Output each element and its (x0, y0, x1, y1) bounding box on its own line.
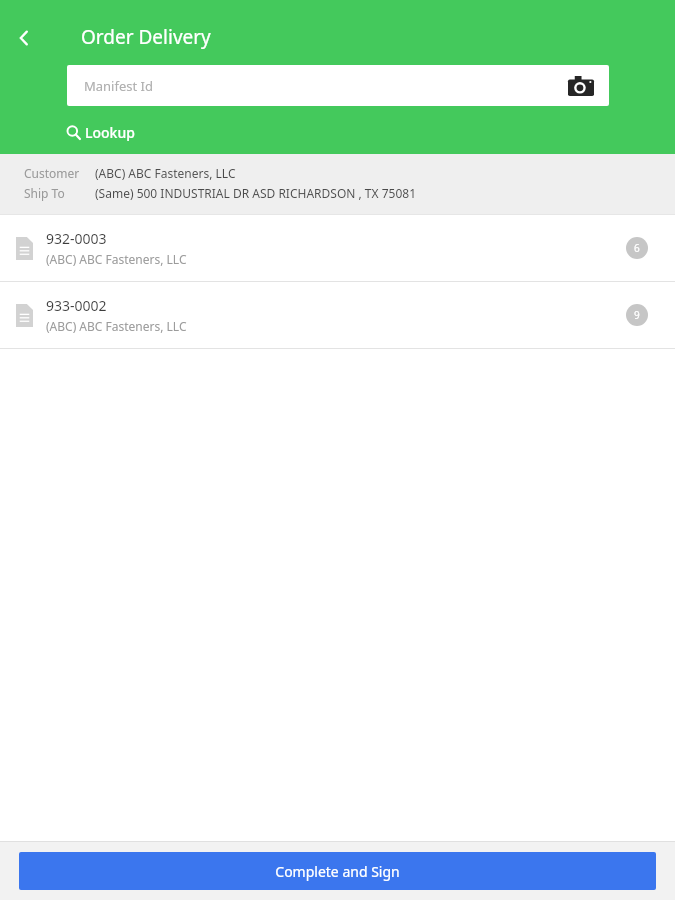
button[interactable]: Lookup (66, 118, 135, 146)
button[interactable]: 933-0002 (0, 282, 675, 348)
staticText: Order Delivery (81, 24, 211, 50)
button[interactable]: 932-0003 (0, 215, 675, 281)
button[interactable]: Complete and Sign (19, 852, 656, 890)
staticText: (ABC) ABC Fasteners, LLC (46, 251, 187, 267)
button[interactable]: Manifest Id (67, 65, 609, 106)
staticText: 932-0003 (46, 229, 107, 248)
staticText: (ABC) ABC Fasteners, LLC (95, 165, 236, 181)
button[interactable]: Scan barcode with camera (563, 68, 599, 104)
staticText: (ABC) ABC Fasteners, LLC (46, 318, 187, 334)
button[interactable]: Back (4, 18, 44, 58)
staticText: 933-0002 (46, 296, 107, 315)
staticText: 6 (634, 241, 640, 255)
staticText: Lookup (85, 123, 135, 142)
staticText: Complete and Sign (275, 862, 400, 881)
staticText: Manifest Id (84, 77, 153, 95)
staticText: Ship To (24, 185, 95, 201)
staticText: (Same) 500 INDUSTRIAL DR ASD RICHARDSON … (95, 185, 416, 201)
staticText: Customer (24, 165, 95, 181)
staticText: 9 (634, 308, 640, 322)
